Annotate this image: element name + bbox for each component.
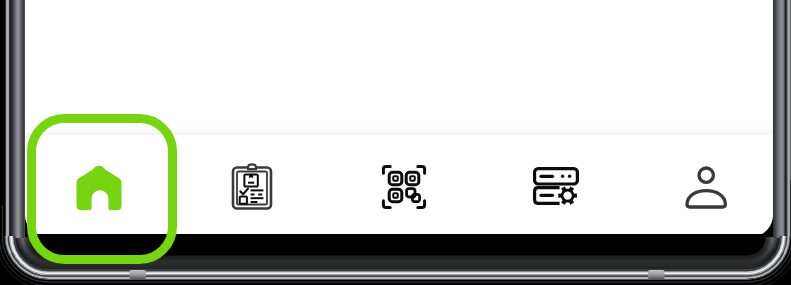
button[interactable]: Manage servers (496, 135, 616, 239)
button[interactable]: Inventory (192, 135, 312, 239)
button[interactable]: Profile (647, 135, 767, 239)
button[interactable]: Scan QR code (344, 135, 464, 239)
button[interactable]: Home (39, 135, 159, 239)
button[interactable]: Home selected (27, 114, 177, 264)
